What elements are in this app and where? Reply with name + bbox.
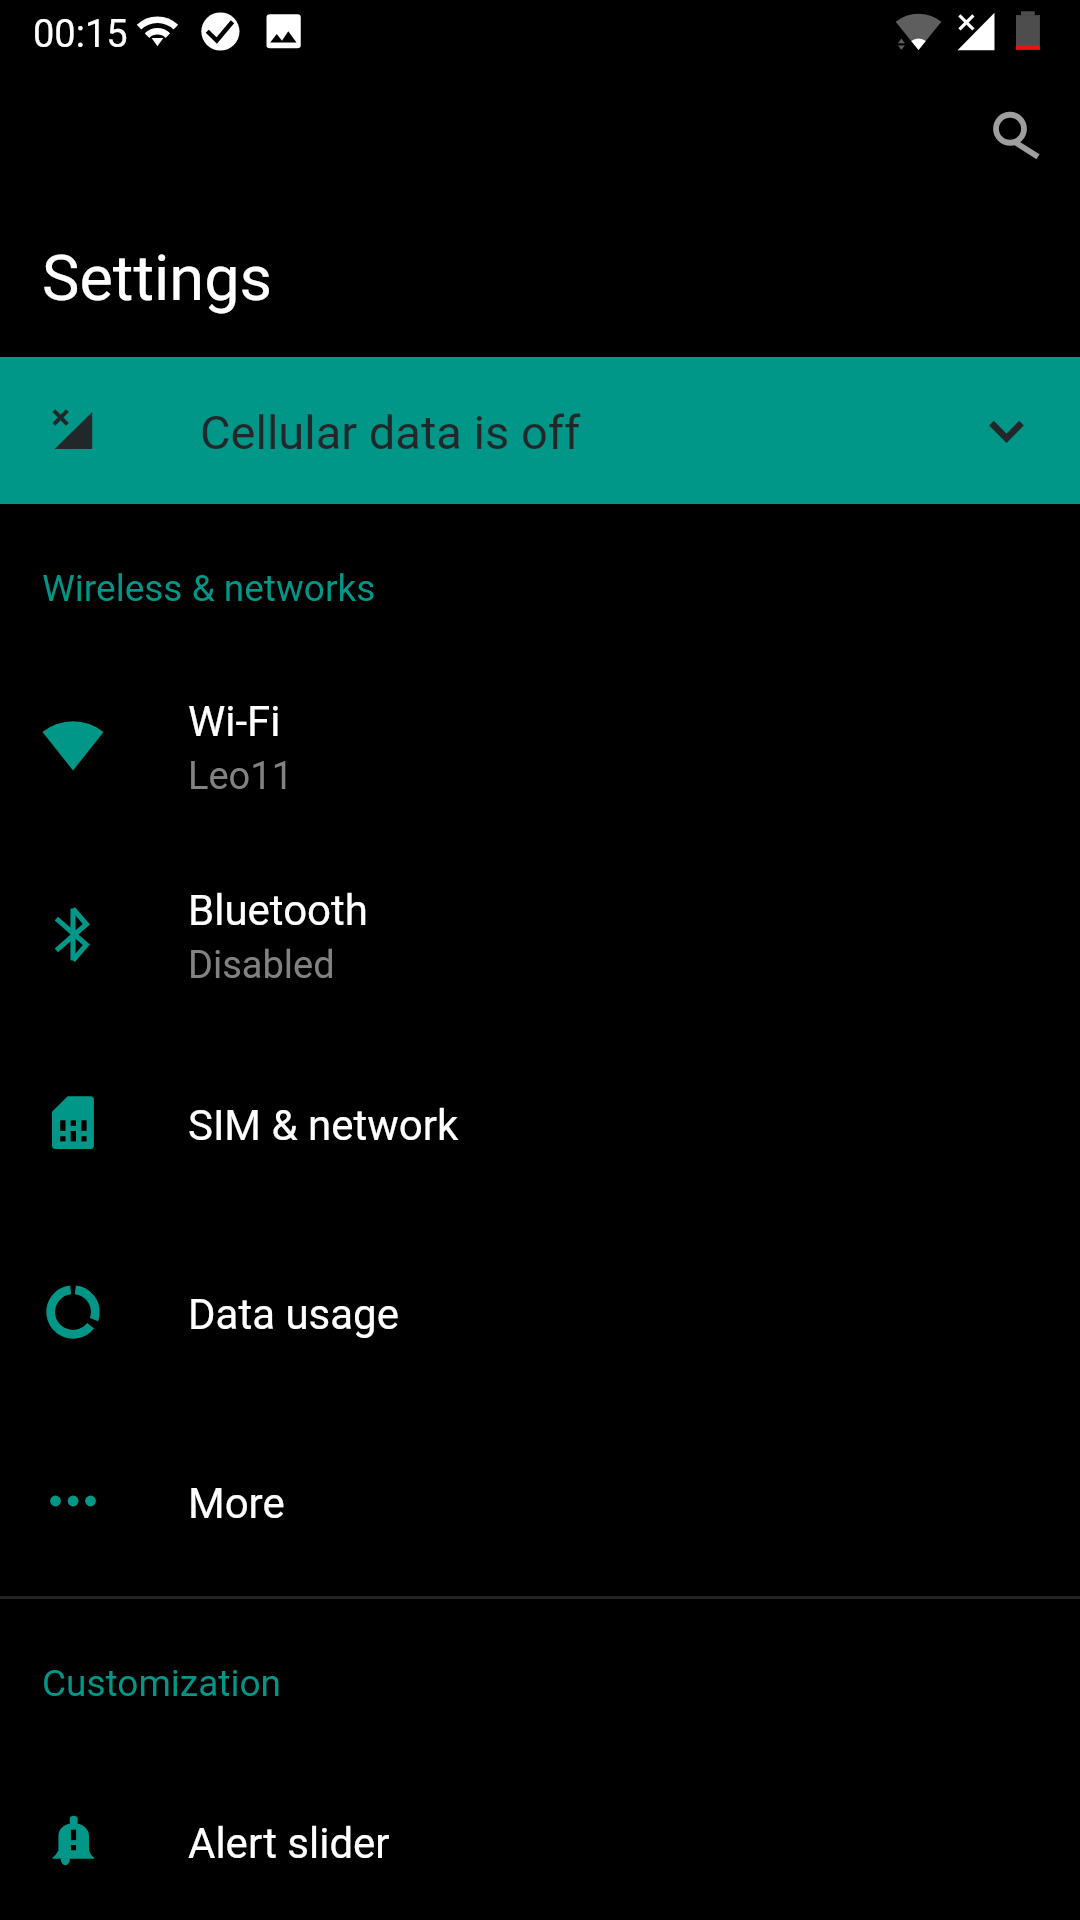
button[interactable] <box>0 357 1080 504</box>
staticText: Wireless & networks <box>42 567 376 610</box>
button[interactable]: Search <box>974 93 1046 165</box>
staticText: SIM & network <box>188 1101 459 1150</box>
button[interactable]: More <box>0 1407 1080 1595</box>
button[interactable]: Wi-Fi <box>0 652 1080 840</box>
staticText: More <box>188 1479 285 1528</box>
button[interactable]: SIM & network <box>0 1029 1080 1217</box>
button[interactable]: Alert slider <box>0 1747 1080 1920</box>
staticText: 00:15 <box>33 12 128 57</box>
staticText: Customization <box>42 1662 281 1705</box>
staticText: Bluetooth <box>188 886 368 935</box>
staticText: Settings <box>42 242 273 316</box>
button[interactable]: Data usage <box>0 1218 1080 1406</box>
staticText: Disabled <box>188 943 335 988</box>
staticText: Alert slider <box>188 1819 390 1868</box>
staticText: Leo11 <box>188 754 294 799</box>
button[interactable]: Bluetooth <box>0 841 1080 1029</box>
staticText: Wi-Fi <box>188 697 281 746</box>
staticText: Cellular data is off <box>200 405 581 460</box>
staticText: Data usage <box>188 1290 399 1339</box>
